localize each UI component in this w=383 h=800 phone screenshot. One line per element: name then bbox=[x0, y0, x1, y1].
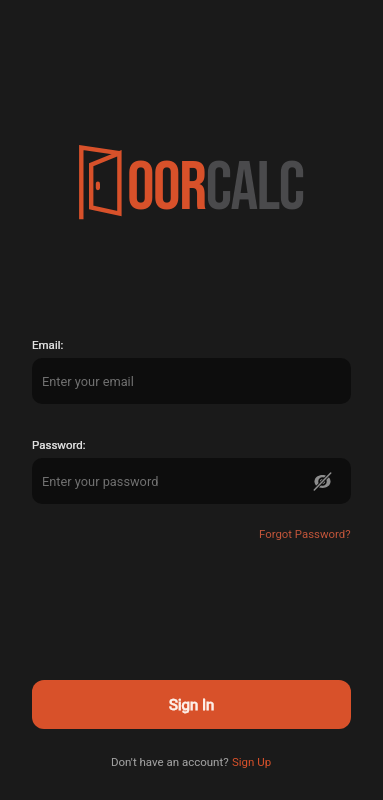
button[interactable]: Sign In bbox=[32, 680, 351, 729]
button[interactable]: Show password bbox=[308, 467, 336, 495]
staticText: Don't have an account? bbox=[111, 755, 232, 768]
staticText: Password: bbox=[32, 438, 86, 451]
button[interactable]: Forgot Password? bbox=[259, 527, 351, 540]
staticText: OORCALC bbox=[127, 147, 304, 230]
staticText: Sign Up bbox=[232, 755, 272, 768]
staticText: Sign In bbox=[169, 696, 215, 714]
staticText: Email: bbox=[32, 338, 64, 351]
staticText: Enter your password bbox=[42, 474, 159, 489]
button[interactable]: Enter your password bbox=[32, 458, 351, 504]
staticText: Forgot Password? bbox=[259, 527, 351, 540]
button[interactable]: Sign Up bbox=[232, 755, 272, 768]
button[interactable]: Enter your email bbox=[32, 358, 351, 404]
staticText: Enter your email bbox=[42, 374, 134, 389]
